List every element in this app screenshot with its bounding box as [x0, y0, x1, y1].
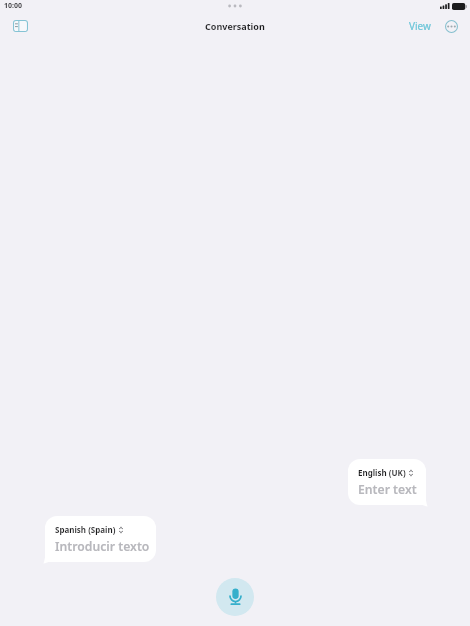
button[interactable]: View	[403, 14, 437, 38]
button[interactable]: Spanish (Spain)	[45, 516, 156, 567]
button[interactable]: English (UK)	[348, 459, 426, 510]
button[interactable]: Record with microphone	[216, 578, 254, 616]
button[interactable]: More options	[438, 13, 464, 39]
staticText: View	[409, 19, 431, 33]
button[interactable]: Show sidebar	[6, 12, 34, 40]
staticText: Enter text	[358, 481, 417, 498]
staticText: English (UK)	[358, 467, 406, 478]
staticText: Spanish (Spain)	[55, 524, 116, 535]
staticText: 10:00	[4, 1, 22, 11]
staticText: Conversation	[205, 20, 265, 32]
staticText: Introducir texto	[55, 538, 150, 555]
